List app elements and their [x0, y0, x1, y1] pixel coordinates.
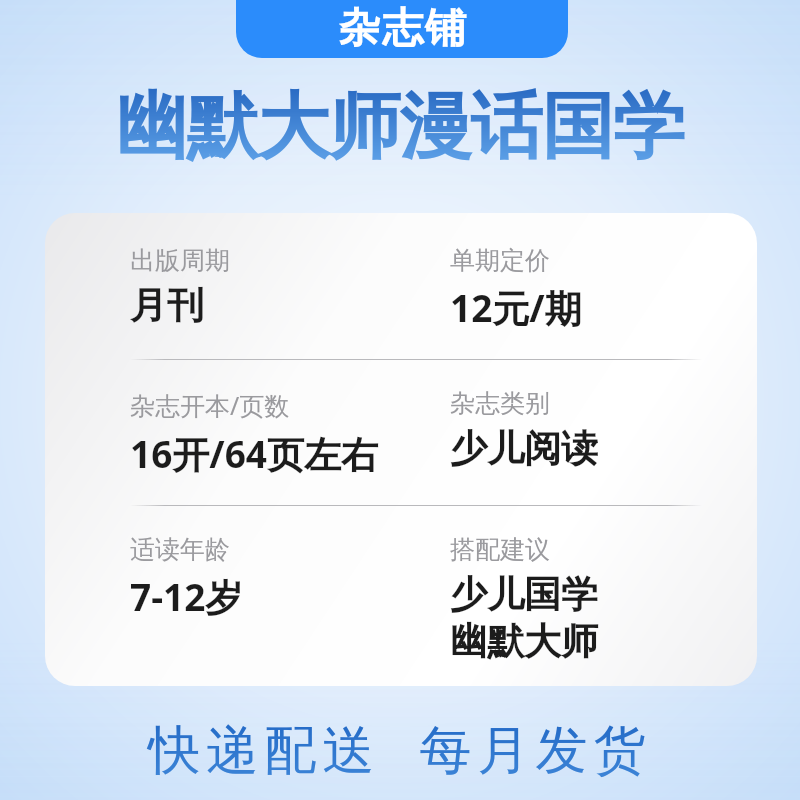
staticText: 杂志铺: [338, 3, 467, 55]
staticText: 杂志类别: [450, 388, 550, 419]
staticText: 搭配建议: [450, 534, 550, 565]
staticText: 出版周期: [130, 245, 230, 276]
staticText: 7-12岁: [130, 571, 243, 622]
button[interactable]: 出版周期: [130, 245, 450, 329]
staticText: 少儿阅读: [450, 425, 598, 472]
button[interactable]: 单期定价: [450, 245, 702, 333]
button[interactable]: 搭配建议: [450, 534, 702, 665]
staticText: 单期定价: [450, 245, 550, 276]
button[interactable]: 杂志开本/页数: [130, 388, 450, 479]
staticText: 12元/期: [450, 282, 582, 333]
button[interactable]: 杂志铺: [236, 0, 568, 58]
staticText: 月刊: [130, 282, 204, 329]
button[interactable]: 适读年龄: [130, 534, 450, 622]
staticText: 杂志开本/页数: [130, 388, 290, 422]
staticText: 幽默大师漫话国学: [116, 82, 684, 173]
staticText: 幽默大师: [450, 618, 598, 665]
staticText: 少儿国学: [450, 571, 598, 618]
button[interactable]: 杂志类别: [450, 388, 702, 472]
staticText: 适读年龄: [130, 534, 230, 565]
staticText: 16开/64页左右: [130, 428, 379, 479]
staticText: 快递配送 每月发货: [148, 712, 652, 783]
